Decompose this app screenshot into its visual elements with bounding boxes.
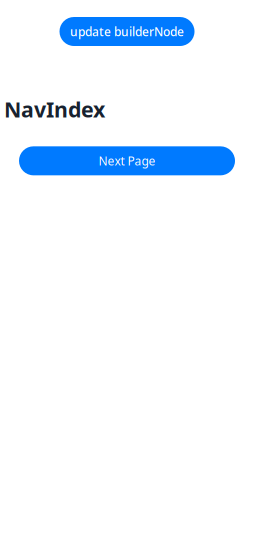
button[interactable]: Next Page xyxy=(19,146,235,175)
button[interactable]: update builderNode xyxy=(59,17,194,46)
staticText: NavIndex xyxy=(4,95,105,123)
staticText: update builderNode xyxy=(70,23,184,39)
staticText: Next Page xyxy=(98,153,155,169)
